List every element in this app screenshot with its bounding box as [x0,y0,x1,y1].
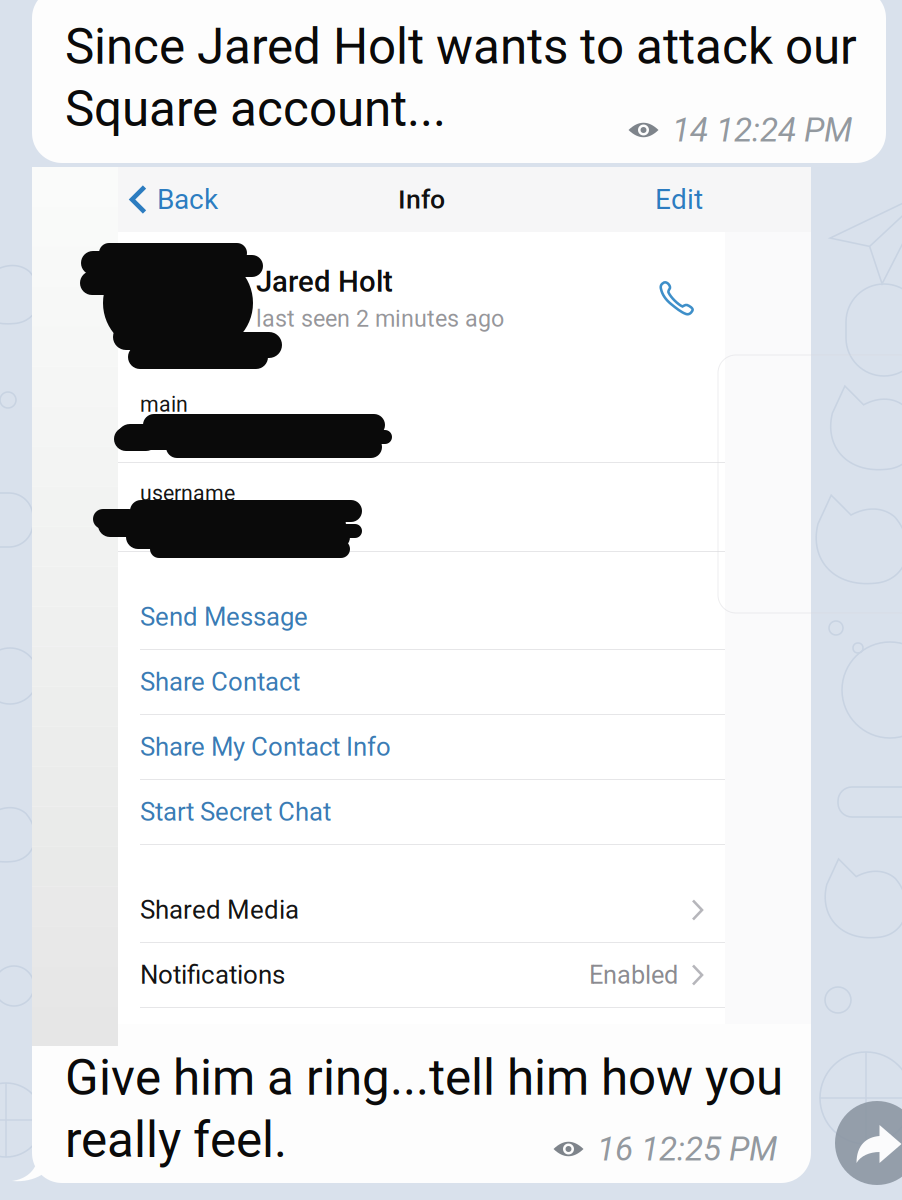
button[interactable]: Forward [835,1101,902,1185]
staticText: Info [398,184,445,215]
staticText: Start Secret Chat [140,797,331,827]
button[interactable]: Start Secret Chat [118,780,725,845]
staticText: last seen 2 minutes ago [256,305,504,332]
staticText: Notifications [140,960,285,990]
staticText: Since Jared Holt wants to attack our Squ… [65,18,857,138]
staticText: Share Contact [140,667,300,697]
staticText: main [140,392,188,417]
staticText: Back [157,183,218,216]
staticText: Edit [655,183,703,216]
button[interactable]: Share My Contact Info [118,715,725,780]
staticText: Share My Contact Info [140,732,391,762]
staticText: Give him a ring...tell him how you reall… [65,1049,783,1169]
button[interactable]: Share Contact [118,650,725,715]
button[interactable]: Send Message [118,585,725,650]
staticText: 14 12:24 PM [672,110,852,150]
staticText: Shared Media [140,895,299,925]
button[interactable]: Back [118,167,218,232]
button[interactable]: Shared Media [118,878,725,943]
staticText: 16 12:25 PM [597,1129,777,1169]
staticText: username [140,481,235,506]
button[interactable]: Notifications [118,943,725,1008]
staticText: Enabled [589,960,678,990]
staticText: Send Message [140,602,308,632]
staticText: Jared Holt [256,265,393,299]
button[interactable]: Edit [655,167,725,232]
